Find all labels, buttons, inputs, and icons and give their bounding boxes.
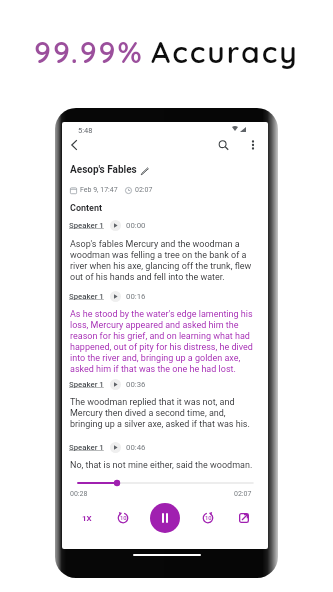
button[interactable]: More options xyxy=(244,136,262,154)
button[interactable]: Open in new window xyxy=(234,508,254,528)
staticText: Speaker 1 xyxy=(69,292,104,301)
staticText: As he stood by the water's edge lamentin… xyxy=(70,309,260,375)
staticText: 00:00 xyxy=(126,221,146,230)
staticText: 00:16 xyxy=(126,292,146,301)
staticText: 00:28 xyxy=(70,490,88,498)
button[interactable]: Play segment xyxy=(110,220,121,231)
staticText: Content xyxy=(70,203,103,214)
button[interactable]: Back xyxy=(65,136,83,154)
staticText: 00:36 xyxy=(126,380,146,389)
button[interactable]: Edit title xyxy=(140,166,149,175)
button[interactable]: Pause xyxy=(150,503,180,533)
staticText: Asop's fables Mercury and the woodman a … xyxy=(70,239,260,283)
staticText: 02:07 xyxy=(234,490,252,498)
staticText: Aesop's Fables xyxy=(70,164,137,176)
button[interactable]: Play segment xyxy=(110,379,121,390)
button[interactable]: Replay 10 seconds xyxy=(113,508,133,528)
staticText: 02:07 xyxy=(135,186,153,194)
staticText: Speaker 1 xyxy=(69,380,104,389)
staticText: No, that is not mine either, said the wo… xyxy=(70,460,253,471)
staticText: 5:48 xyxy=(78,126,93,135)
staticText: Feb 9, 17:47 xyxy=(80,186,118,194)
button[interactable]: Search xyxy=(214,136,232,154)
staticText: Speaker 1 xyxy=(69,221,104,230)
staticText: 00:46 xyxy=(126,443,146,452)
staticText: 1X xyxy=(82,514,92,523)
staticText: 10 xyxy=(205,515,212,522)
staticText: The woodman replied that it was not, and… xyxy=(70,397,260,430)
staticText: Accuracy xyxy=(151,33,299,71)
button[interactable]: Play segment xyxy=(110,291,121,302)
button[interactable]: Forward 10 seconds xyxy=(198,508,218,528)
button[interactable]: Change speed xyxy=(77,508,97,528)
staticText: 99.99% xyxy=(34,33,144,71)
button[interactable]: Play segment xyxy=(110,442,121,453)
staticText: 10 xyxy=(120,515,127,522)
staticText: Speaker 1 xyxy=(69,443,104,452)
